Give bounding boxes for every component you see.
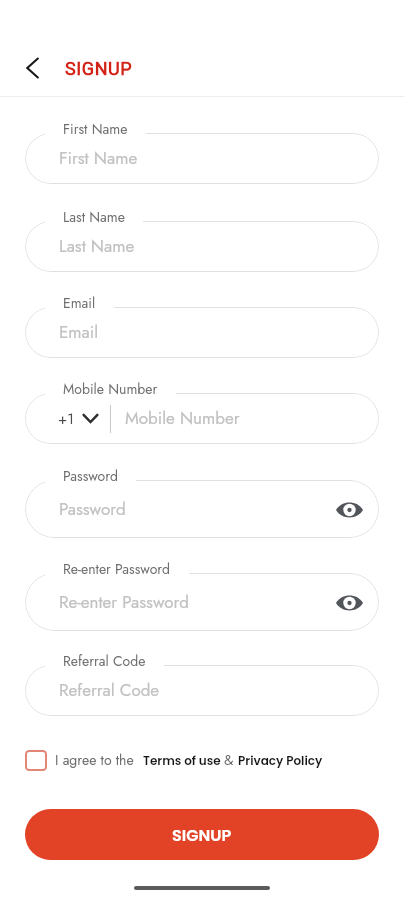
staticText: Email: [63, 293, 96, 313]
staticText: Mobile Number: [125, 406, 240, 431]
staticText: Referral Code: [59, 678, 160, 703]
button[interactable]: I agree to the terms: [25, 750, 47, 771]
staticText: Privacy Policy: [238, 752, 323, 769]
staticText: SIGNUP: [172, 824, 232, 846]
button[interactable]: Re-enter Password: [25, 573, 379, 631]
button[interactable]: +1: [25, 393, 379, 444]
staticText: Password: [63, 466, 118, 486]
button[interactable]: Back: [20, 55, 46, 81]
staticText: First Name: [63, 119, 128, 139]
button[interactable]: SIGNUP: [25, 809, 379, 860]
button[interactable]: Email: [25, 307, 379, 358]
staticText: Re-enter Password: [63, 559, 171, 579]
staticText: Terms of use: [143, 752, 224, 769]
button[interactable]: Toggle password visibility: [334, 494, 365, 525]
staticText: Password: [59, 497, 126, 522]
staticText: Last Name: [59, 234, 135, 259]
staticText: Email: [59, 320, 99, 345]
button[interactable]: Password: [25, 480, 379, 538]
staticText: &: [224, 750, 238, 770]
button[interactable]: First Name: [25, 133, 379, 184]
staticText: SIGNUP: [65, 58, 133, 79]
button[interactable]: Referral Code: [25, 665, 379, 716]
staticText: +1: [58, 408, 74, 430]
staticText: I agree to the: [55, 750, 143, 770]
button[interactable]: Last Name: [25, 221, 379, 272]
button[interactable]: Toggle password visibility: [334, 587, 365, 618]
staticText: Last Name: [63, 207, 125, 227]
staticText: Referral Code: [63, 651, 146, 671]
staticText: First Name: [59, 146, 138, 171]
staticText: Mobile Number: [63, 379, 158, 399]
staticText: Re-enter Password: [59, 590, 189, 615]
